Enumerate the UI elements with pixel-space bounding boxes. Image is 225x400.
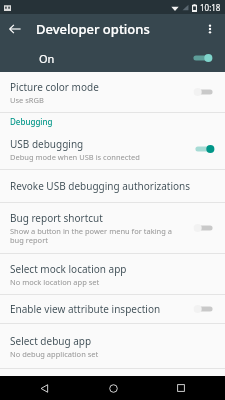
button[interactable]: Toggle [193,85,215,99]
staticText: Use sRGB [10,95,44,105]
button[interactable]: Back [20,376,68,400]
button[interactable]: Toggle [193,302,215,316]
staticText: No mock location app set [10,277,100,287]
staticText: Enable view attribute inspection [10,302,161,316]
staticText: Show a button in the power menu for taki… [10,226,185,245]
button[interactable]: USB debugging [0,129,225,169]
staticText: On [39,51,55,66]
staticText: Debugging [10,116,53,127]
staticText: Select debug app [10,334,92,348]
staticText: No debug application set [10,349,99,359]
staticText: Picture color mode [10,80,99,94]
staticText: Debug mode when USB is connected [10,152,140,162]
button[interactable]: Back [0,14,30,44]
button[interactable]: Revoke USB debugging authorizations [0,170,225,202]
staticText: USB debugging [10,137,84,151]
button[interactable]: Bug report shortcut [0,203,225,253]
button[interactable]: On [0,44,225,72]
button[interactable]: Enable view attribute inspection [0,295,225,323]
button[interactable]: Select debug app [0,324,225,368]
button[interactable]: Recents [157,376,205,400]
button[interactable]: More options [195,14,225,44]
staticText: Developer options [36,20,150,38]
staticText: Revoke USB debugging authorizations [10,179,191,193]
button[interactable]: Toggle [191,51,213,65]
staticText: Bug report shortcut [10,211,103,225]
button[interactable]: Toggle [193,142,215,156]
button[interactable]: Select mock location app [0,254,225,294]
button[interactable]: Toggle [193,221,215,235]
button[interactable]: Home [89,376,137,400]
staticText: Select mock location app [10,262,127,276]
staticText: 10:18 [200,2,221,13]
button[interactable]: Picture color mode [0,72,225,112]
